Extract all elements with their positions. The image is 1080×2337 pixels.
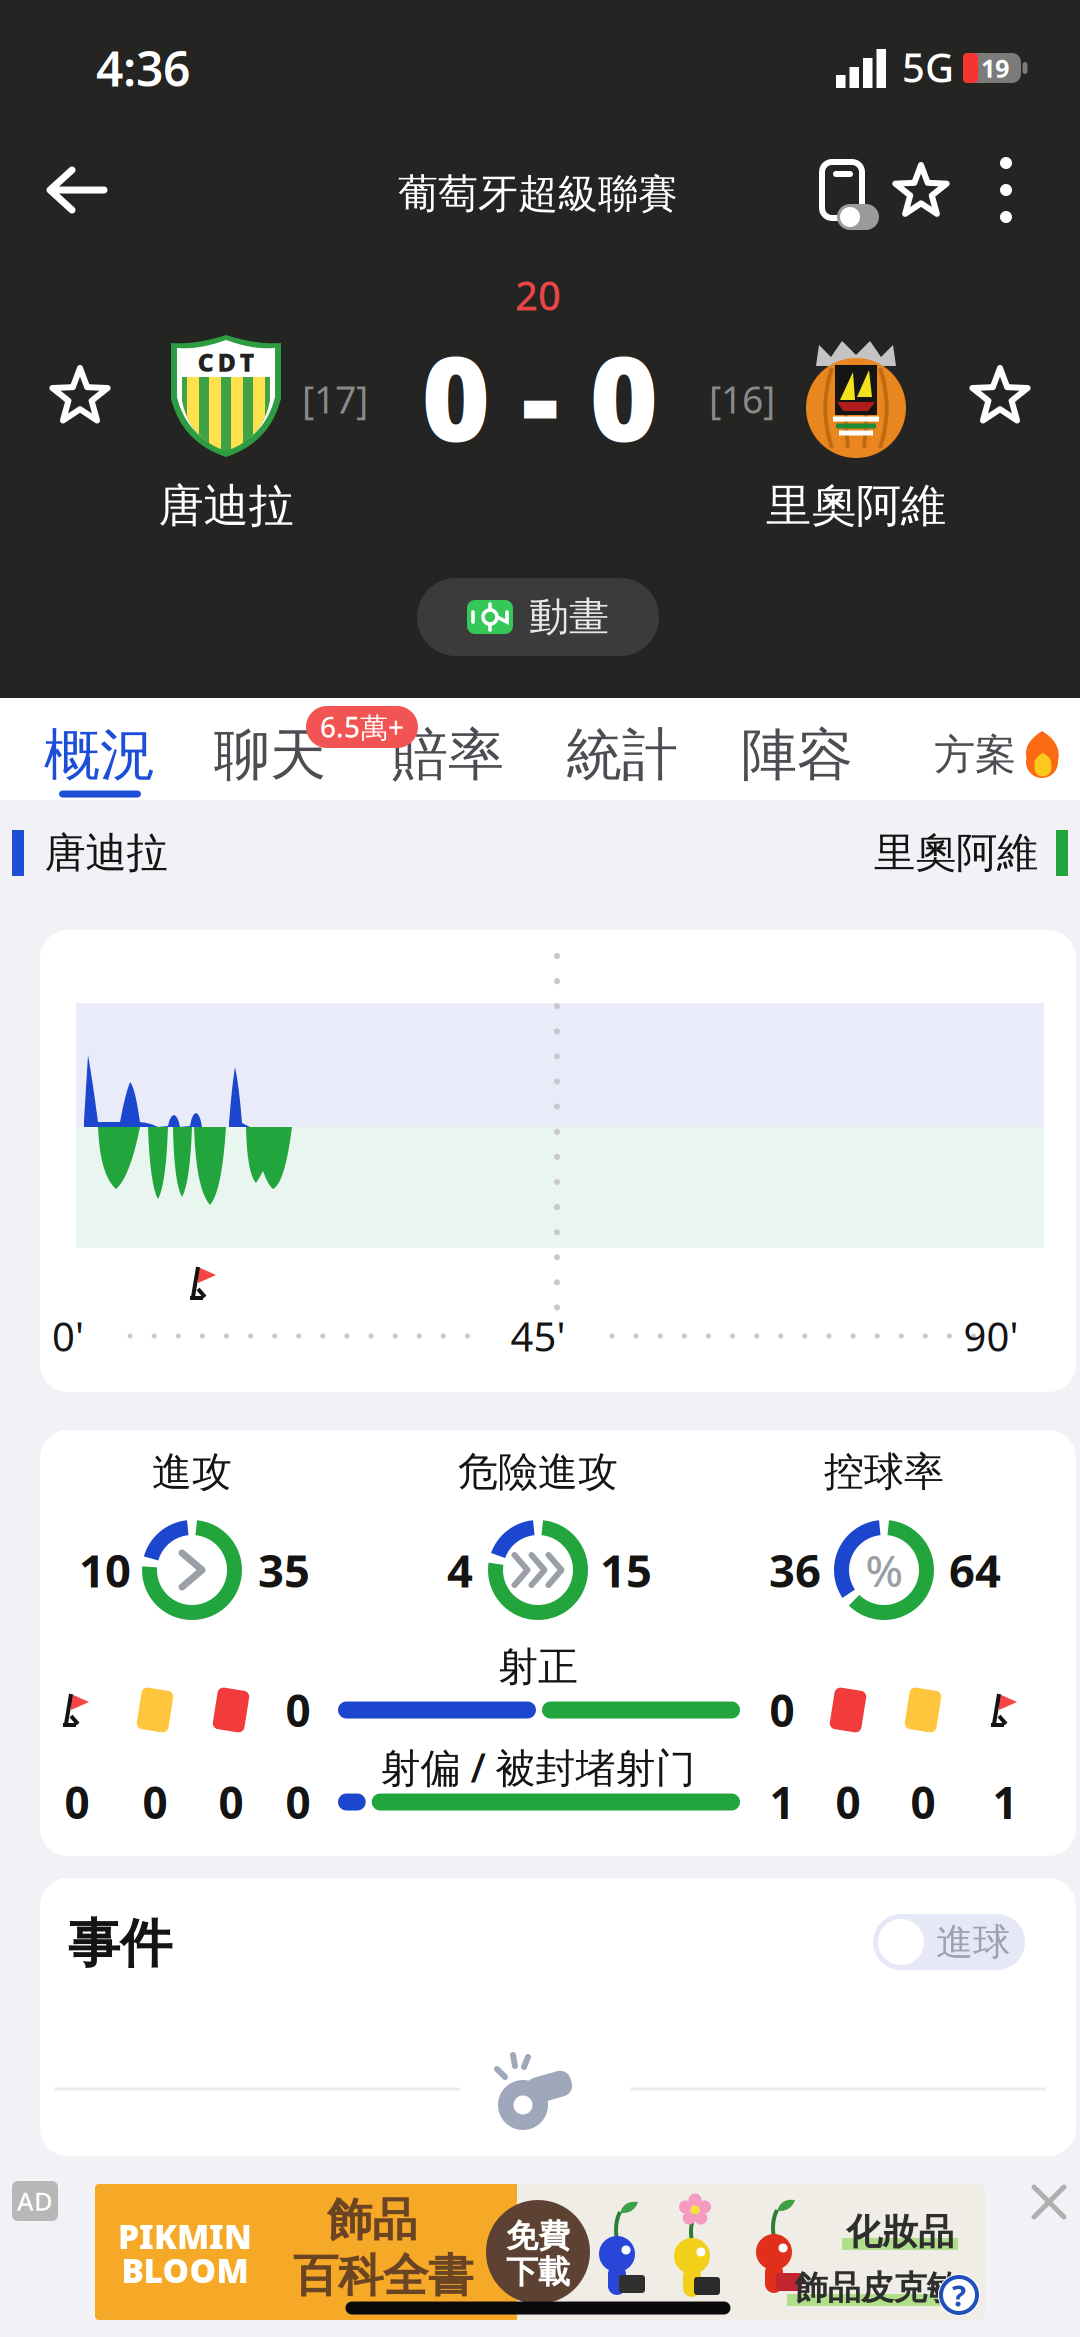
staticText: 0	[64, 1773, 89, 1831]
staticText: PIKMIN	[118, 2214, 252, 2258]
button[interactable]: Advertisement	[95, 2184, 985, 2320]
button[interactable]: Favourite away team	[0, 0, 1080, 698]
staticText: 里奧阿維	[766, 478, 946, 534]
staticText: 百科全書	[293, 2248, 473, 2304]
staticText: 事件	[68, 1912, 172, 1976]
staticText: 葡萄牙超級聯賽	[398, 169, 678, 218]
button[interactable]: Favourite	[0, 0, 1080, 698]
staticText: 0'	[52, 1309, 84, 1362]
staticText: 0	[910, 1773, 935, 1831]
staticText: 0	[218, 1773, 243, 1831]
staticText: 45'	[510, 1309, 565, 1362]
staticText: 聊天	[214, 721, 326, 789]
staticText: 唐迪拉	[158, 478, 293, 534]
staticText: 0	[769, 1681, 794, 1739]
button[interactable]: 統計	[566, 721, 678, 789]
staticText: 35	[258, 1540, 310, 1600]
button[interactable]: Close ad	[1034, 2187, 1064, 2217]
staticText: [16]	[709, 374, 775, 424]
staticText: AD	[17, 2184, 53, 2218]
button[interactable]: More	[0, 0, 1080, 698]
staticText: 64	[949, 1540, 1001, 1600]
button[interactable]: 概況	[44, 721, 156, 789]
button[interactable]: 陣容	[741, 721, 853, 789]
button[interactable]: 賠率	[392, 721, 504, 789]
button[interactable]: Favourite home team	[0, 0, 1080, 698]
button[interactable]: Live activity	[0, 0, 1080, 698]
staticText: 射正	[498, 1642, 578, 1691]
staticText: 射偏 / 被封堵射门	[380, 1740, 695, 1793]
staticText: 控球率	[824, 1447, 944, 1496]
staticText: 0 - 0	[421, 318, 658, 474]
staticText: 15	[600, 1540, 652, 1600]
staticText: 進攻	[152, 1447, 232, 1496]
staticText: 4	[447, 1540, 473, 1600]
staticText: BLOOM	[121, 2248, 248, 2292]
staticText: ?	[952, 2275, 966, 2314]
staticText: 90'	[963, 1309, 1018, 1362]
staticText: 動畫	[529, 592, 609, 641]
staticText: 36	[769, 1540, 821, 1600]
staticText: 6.5萬+	[320, 708, 404, 746]
staticText: 危險進攻	[458, 1447, 618, 1496]
staticText: 飾品皮克敏	[794, 2267, 959, 2308]
button[interactable]: 動畫	[417, 578, 659, 656]
button[interactable]: Back	[0, 0, 1080, 698]
staticText: 0	[285, 1773, 310, 1831]
staticText: 0	[285, 1681, 310, 1739]
staticText: [17]	[302, 374, 368, 424]
staticText: 賠率	[392, 721, 504, 789]
staticText: 下載	[506, 2252, 570, 2292]
button[interactable]: 方案	[934, 730, 1062, 780]
staticText: 里奧阿維	[874, 828, 1038, 878]
staticText: 陣容	[741, 721, 853, 789]
button[interactable]: Goals filter toggle	[873, 1914, 1025, 1970]
staticText: 化妝品	[846, 2210, 954, 2254]
staticText: 1	[769, 1773, 794, 1831]
button[interactable]: 聊天	[214, 721, 326, 789]
staticText: 免費	[506, 2216, 570, 2256]
staticText: 概況	[44, 721, 156, 789]
staticText: 飾品	[327, 2192, 417, 2248]
staticText: 統計	[566, 721, 678, 789]
staticText: 4:36	[96, 36, 190, 100]
staticText: 方案	[934, 730, 1016, 780]
staticText: 5G	[902, 40, 954, 93]
staticText: 10	[79, 1540, 131, 1600]
staticText: 進球	[936, 1919, 1010, 1965]
staticText: CDT	[197, 345, 254, 379]
staticText: 0	[835, 1773, 860, 1831]
staticText: %	[865, 1541, 902, 1599]
staticText: 唐迪拉	[44, 828, 167, 878]
staticText: 19	[981, 51, 1009, 85]
staticText: 0	[142, 1773, 167, 1831]
staticText: 20	[515, 268, 561, 321]
staticText: 1	[992, 1773, 1017, 1831]
